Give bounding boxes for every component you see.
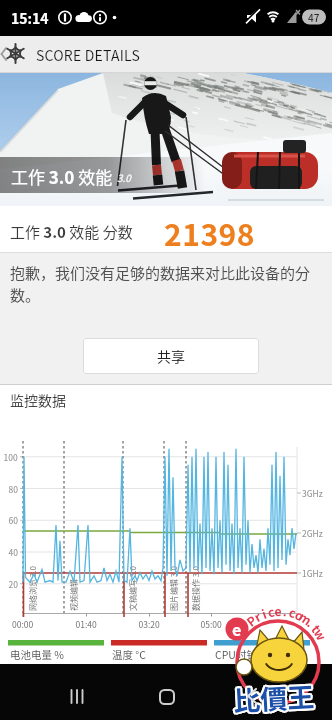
staticText: 15:14 — [11, 8, 49, 28]
staticText: 工作 3.0 效能 — [11, 164, 113, 189]
staticText: 3.0 — [117, 170, 131, 184]
button[interactable] — [62, 670, 106, 714]
staticText: 监控数据 — [10, 390, 66, 410]
button[interactable] — [146, 670, 190, 714]
staticText: 共享 — [157, 346, 185, 366]
staticText: 电池电量 % — [10, 647, 65, 662]
staticText: 21398 — [164, 211, 255, 254]
button[interactable] — [230, 670, 274, 714]
staticText: 47 — [308, 10, 320, 24]
button[interactable]: 共享 — [83, 338, 259, 374]
staticText: 温度 °C — [112, 647, 146, 662]
staticText: CPU时钟 GHz — [215, 647, 280, 662]
staticText: 工作 3.0 效能 分数 — [10, 221, 133, 243]
staticText: 抱歉，我们没有足够的数据来对比此设备的分数。 — [10, 262, 322, 322]
button[interactable]: SCORE DETAILS — [36, 45, 140, 65]
